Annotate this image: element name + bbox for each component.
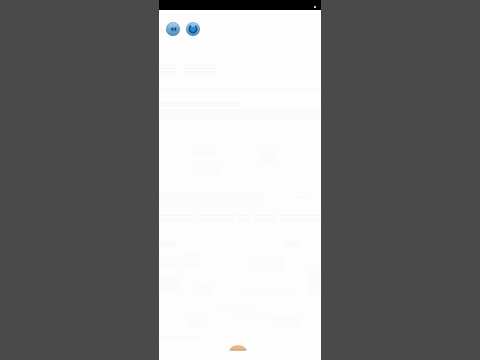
button[interactable]: Logo (229, 342, 247, 351)
button[interactable]: Reload (186, 22, 200, 36)
button[interactable]: Rewind (166, 22, 180, 36)
